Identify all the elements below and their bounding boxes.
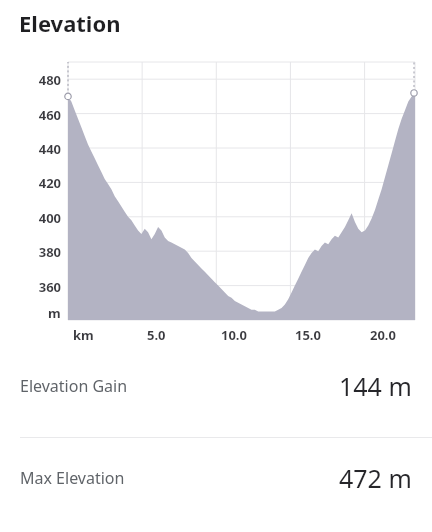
- staticText: 360: [38, 278, 61, 296]
- staticText: 472 m: [339, 461, 412, 495]
- button[interactable]: Max Elevation: [0, 456, 432, 500]
- staticText: 20.0: [370, 326, 396, 344]
- staticText: Elevation: [19, 8, 121, 38]
- staticText: 15.0: [295, 326, 321, 344]
- staticText: 144 m: [339, 369, 412, 403]
- staticText: 420: [38, 174, 61, 192]
- staticText: km: [73, 326, 94, 344]
- staticText: 400: [38, 209, 61, 227]
- staticText: 380: [38, 243, 61, 261]
- staticText: 480: [38, 71, 61, 89]
- staticText: 460: [38, 106, 61, 124]
- button[interactable]: Elevation Gain: [0, 364, 432, 408]
- staticText: 5.0: [147, 326, 166, 344]
- staticText: Elevation Gain: [20, 375, 128, 397]
- staticText: 10.0: [221, 326, 247, 344]
- staticText: 440: [38, 140, 61, 158]
- staticText: Max Elevation: [20, 467, 125, 489]
- staticText: m: [48, 304, 61, 322]
